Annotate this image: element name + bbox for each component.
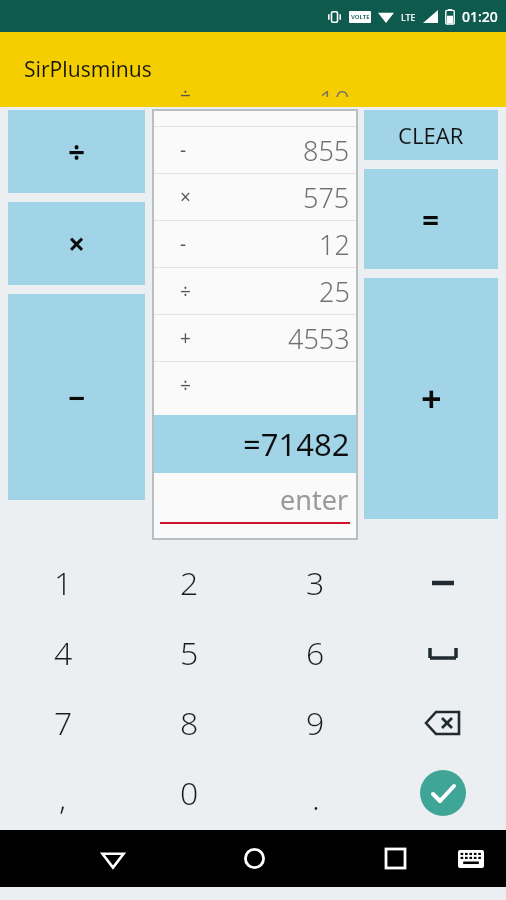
staticText: 8 <box>180 701 199 745</box>
staticText: + <box>421 374 442 423</box>
staticText: enter <box>280 481 349 518</box>
button[interactable]: × <box>154 174 356 220</box>
button[interactable]: 2 <box>126 548 252 618</box>
staticText: 4553 <box>288 320 350 357</box>
button[interactable]: 9 <box>252 688 379 758</box>
button[interactable]: - <box>154 127 356 173</box>
staticText: 3 <box>306 561 325 605</box>
button[interactable]: + <box>154 315 356 361</box>
button[interactable]: , <box>0 758 126 828</box>
staticText: . <box>312 776 320 820</box>
button[interactable]: 8 <box>126 688 252 758</box>
staticText: - <box>180 137 187 163</box>
staticText: CLEAR <box>398 120 464 150</box>
staticText: 575 <box>303 179 350 216</box>
button[interactable]: Switch keyboard <box>446 834 496 884</box>
button[interactable]: CLEAR <box>364 110 498 160</box>
staticText: =71482 <box>243 423 350 465</box>
button[interactable]: 1 <box>0 548 126 618</box>
staticText: + <box>180 325 191 351</box>
button[interactable]: 5 <box>126 618 252 688</box>
button[interactable]: Home <box>221 830 287 887</box>
staticText: 10 <box>319 82 350 97</box>
staticText: 0 <box>180 771 199 815</box>
button[interactable]: = <box>364 169 498 269</box>
staticText: × <box>180 184 191 210</box>
button[interactable]: 0 <box>126 758 252 828</box>
staticText: ÷ <box>180 278 191 304</box>
staticText: 25 <box>319 273 350 310</box>
button[interactable]: Done <box>379 758 506 828</box>
staticText: 855 <box>303 132 350 169</box>
staticText: 5 <box>180 631 199 675</box>
staticText: SirPlusminus <box>24 55 152 84</box>
button[interactable]: =71482 <box>154 415 356 473</box>
button[interactable]: 6 <box>252 618 379 688</box>
button[interactable]: Back <box>80 830 146 887</box>
staticText: 6 <box>306 631 325 675</box>
staticText: , <box>59 776 67 820</box>
button[interactable]: Backspace <box>379 688 506 758</box>
button[interactable]: ÷ <box>8 110 145 193</box>
button[interactable]: + <box>364 278 498 519</box>
staticText: ÷ <box>180 82 191 97</box>
button[interactable]: Minus <box>379 548 506 618</box>
button[interactable]: Recents <box>362 830 428 887</box>
staticText: ÷ <box>68 131 86 172</box>
staticText: VOLTE <box>351 13 370 21</box>
button[interactable]: 7 <box>0 688 126 758</box>
staticText: 7 <box>54 701 73 745</box>
button[interactable]: 4 <box>0 618 126 688</box>
button[interactable]: ÷ <box>154 362 356 408</box>
staticText: ÷ <box>180 372 191 398</box>
button[interactable]: Space <box>379 618 506 688</box>
button[interactable]: - <box>154 221 356 267</box>
button[interactable]: enter <box>154 476 356 538</box>
button[interactable]: − <box>8 294 145 500</box>
staticText: 1 <box>54 561 73 605</box>
staticText: = <box>422 199 440 240</box>
staticText: 4 <box>54 631 73 675</box>
button[interactable]: . <box>252 758 379 828</box>
staticText: LTE <box>401 11 416 23</box>
button[interactable]: ÷ <box>154 268 356 314</box>
staticText: 01:20 <box>462 7 498 26</box>
staticText: 9 <box>306 701 325 745</box>
staticText: - <box>180 231 187 257</box>
staticText: 12 <box>319 226 350 263</box>
staticText: 2 <box>180 561 199 605</box>
staticText: − <box>68 377 86 418</box>
button[interactable]: × <box>8 202 145 285</box>
staticText: × <box>68 223 86 264</box>
button[interactable]: 3 <box>252 548 379 618</box>
